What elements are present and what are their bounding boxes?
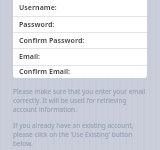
staticText: Email: [19, 52, 41, 62]
button[interactable]: Username: [13, 0, 147, 16]
staticText: Confirm Password: [19, 36, 85, 46]
button[interactable]: Email: [13, 49, 147, 65]
staticText: Confirm Email: [19, 67, 71, 77]
staticText: Please make sure that you enter your ema… [13, 87, 150, 114]
button[interactable]: Confirm Password: [13, 33, 147, 48]
staticText: Username: [19, 3, 57, 13]
button[interactable]: Confirm Email: [13, 66, 147, 78]
button[interactable]: Password: [13, 17, 147, 32]
staticText: If you already have an existing account,… [13, 121, 150, 148]
staticText: Password: [19, 20, 55, 30]
